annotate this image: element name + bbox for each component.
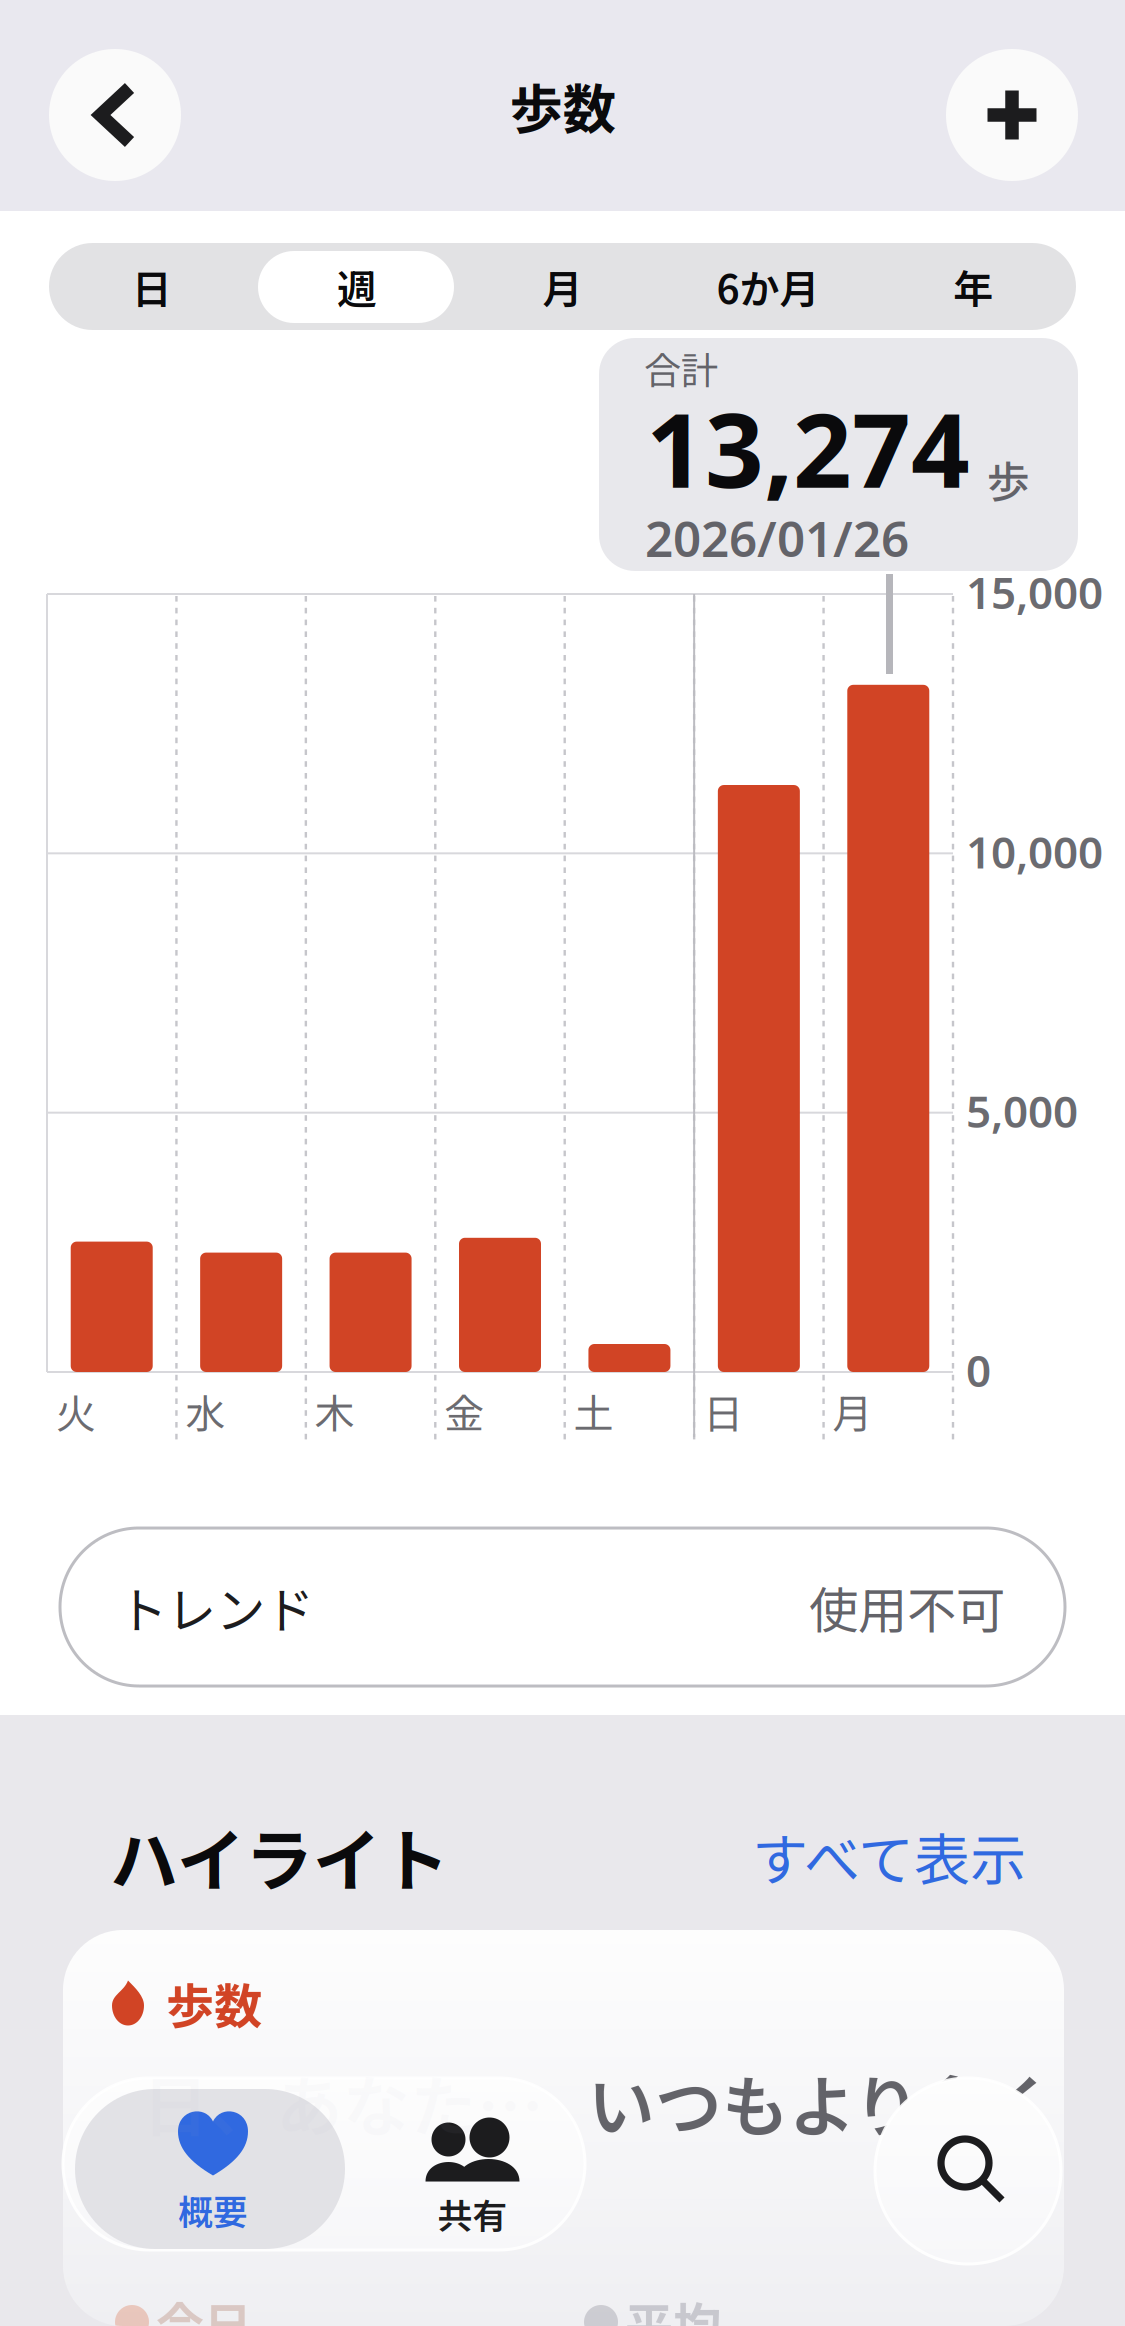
staticText: 土 (574, 1382, 614, 1440)
button[interactable]: 6か月 (665, 243, 871, 330)
staticText: 5,000 (966, 1081, 1078, 1140)
button[interactable]: 月 (460, 243, 665, 330)
staticText: 歩数 (166, 1968, 262, 2038)
staticText: 月 (542, 257, 582, 315)
staticText: 週 (337, 257, 377, 315)
staticText: 6か月 (716, 257, 819, 315)
staticText: 日 (703, 1382, 743, 1440)
staticText: 日、あなたの歩数は (142, 2054, 552, 2150)
button[interactable]: 追加 (946, 49, 1078, 181)
button[interactable]: 検索 (875, 2078, 1061, 2264)
staticText: 日 (132, 257, 172, 315)
staticText: いつもより多く (588, 2054, 1055, 2150)
staticText: 概要 (178, 2185, 248, 2235)
staticText: 今日 (156, 2287, 252, 2326)
staticText: 木 (315, 1382, 355, 1440)
staticText: 合計 (644, 341, 718, 395)
button[interactable]: 戻る (49, 49, 181, 181)
staticText: 火 (56, 1382, 96, 1440)
button[interactable]: 週 (254, 243, 460, 330)
staticText: 0 (966, 1341, 991, 1399)
staticText: 15,000 (966, 563, 1103, 621)
button[interactable]: トレンド (60, 1528, 1065, 1686)
button[interactable]: 年 (871, 243, 1076, 330)
staticText: 共有 (437, 2189, 507, 2239)
staticText: 平均 (625, 2287, 721, 2326)
button[interactable]: 共有 (345, 2089, 585, 2249)
staticText: 金 (444, 1382, 484, 1440)
staticText: 水 (185, 1382, 225, 1440)
staticText: 使用不可 (809, 1571, 1005, 1643)
staticText: 歩数 (509, 67, 615, 144)
button[interactable]: 日 (49, 243, 254, 330)
staticText: 月 (833, 1382, 873, 1440)
button[interactable]: すべて表示 (752, 1815, 1026, 1897)
staticText: ハイライト (110, 1807, 449, 1905)
staticText: すべて表示 (752, 1815, 1026, 1897)
staticText: 10,000 (966, 822, 1103, 880)
staticText: 2026/01/26 (645, 505, 909, 570)
staticText: 年 (953, 257, 993, 315)
staticText: トレンド (118, 1571, 314, 1643)
staticText: 13,274 (646, 380, 970, 516)
staticText: 歩 (987, 448, 1030, 510)
button[interactable]: 概要 (75, 2089, 345, 2249)
